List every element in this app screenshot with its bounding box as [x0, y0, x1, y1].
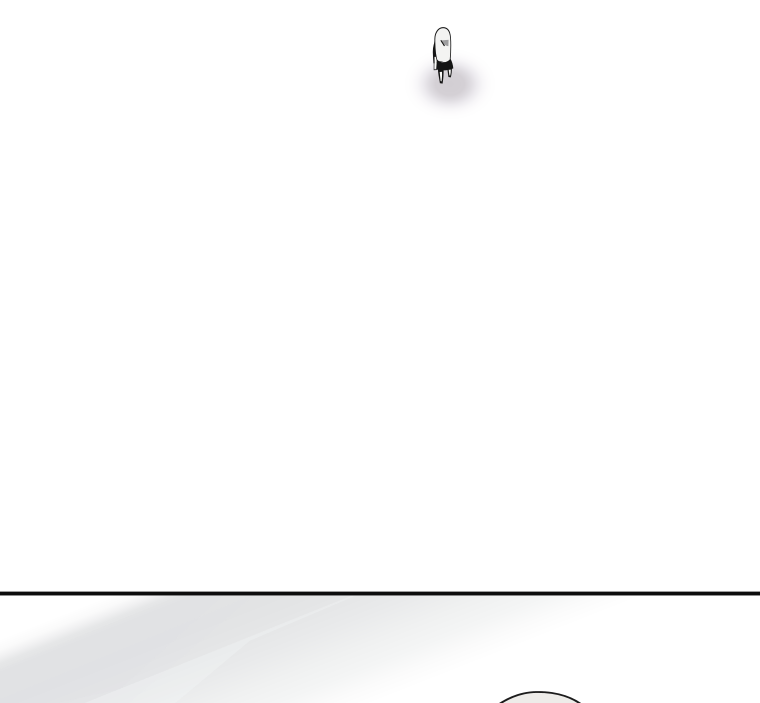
button[interactable]: Comic page — tap to show reader controls [0, 0, 760, 703]
